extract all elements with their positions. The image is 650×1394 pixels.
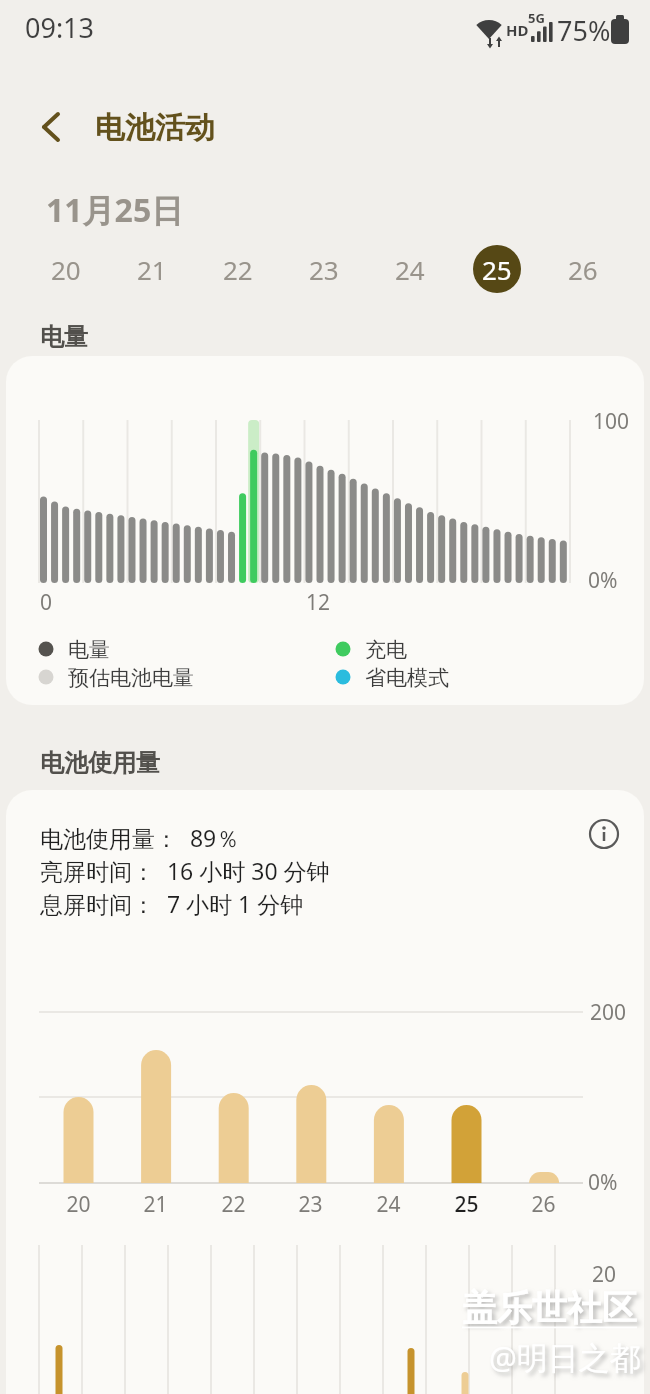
button[interactable]: 24 [386,245,434,293]
staticText: 23 [298,1190,323,1219]
button[interactable]: 23 [300,245,348,293]
button[interactable]: 21 [128,245,176,293]
staticText: HD [506,20,529,40]
staticText: 0 [40,588,53,617]
staticText: 充电 [365,637,407,663]
staticText: 盖乐世社区 [462,1286,637,1330]
button[interactable] [584,814,624,854]
staticText: 5G [528,9,545,27]
staticText: 75% [557,12,611,49]
staticText: 20 [66,1190,91,1219]
staticText: 电池使用量： 89％ [40,822,240,853]
button[interactable]: 26 [559,245,607,293]
staticText: @明日之都 [489,1336,641,1378]
staticText: 24 [395,252,425,287]
staticText: 省电模式 [365,665,449,691]
staticText: 电量 [40,322,88,352]
staticText: 电池使用量 [40,748,160,778]
staticText: 22 [223,252,253,287]
staticText: 亮屏时间： 16 小时 30 分钟 [40,855,330,886]
staticText: 12 [306,588,331,617]
staticText: 21 [137,252,167,287]
button[interactable] [30,103,78,151]
staticText: 23 [309,252,339,287]
staticText: 21 [143,1190,168,1219]
staticText: 24 [376,1190,401,1219]
staticText: 25 [482,252,512,287]
staticText: 100 [593,407,630,436]
staticText: 25 [454,1190,479,1219]
staticText: 26 [531,1190,556,1219]
button[interactable]: 22 [214,245,262,293]
staticText: 09:13 [25,9,95,46]
staticText: 20 [51,252,81,287]
staticText: 电池活动 [95,109,215,147]
staticText: 26 [568,252,598,287]
staticText: 20 [592,1260,617,1289]
staticText: 预估电池电量 [68,665,194,691]
staticText: 息屏时间： 7 小时 1 分钟 [40,888,304,919]
button[interactable]: 25 [473,245,521,293]
staticText: 0% [588,1168,618,1197]
staticText: 电量 [68,637,110,663]
staticText: 0% [588,566,618,595]
staticText: 11月25日 [46,188,184,232]
button[interactable]: 20 [42,245,90,293]
staticText: 22 [221,1190,246,1219]
staticText: 200 [590,998,627,1027]
